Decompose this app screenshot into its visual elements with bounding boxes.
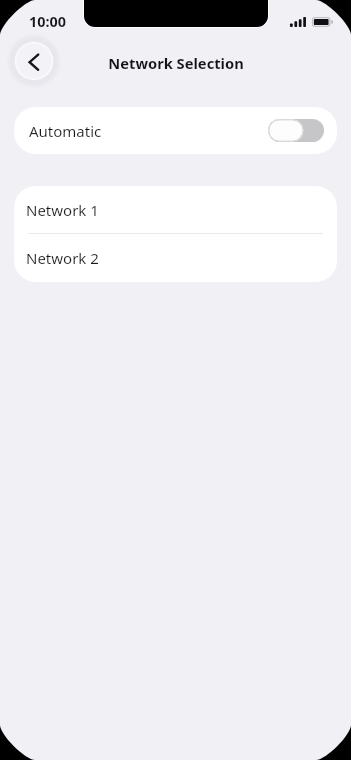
button[interactable]: Network 1 (14, 186, 337, 233)
staticText: 10:00 (29, 12, 66, 32)
staticText: Network 2 (26, 248, 99, 268)
button[interactable]: Automatic (14, 107, 337, 154)
staticText: Network 1 (26, 200, 99, 220)
staticText: Network Selection (108, 53, 244, 73)
staticText: Automatic (29, 121, 102, 141)
button[interactable]: Back (9, 37, 59, 85)
button[interactable]: Network 2 (14, 234, 337, 282)
button[interactable]: Automatic toggle (268, 119, 324, 142)
